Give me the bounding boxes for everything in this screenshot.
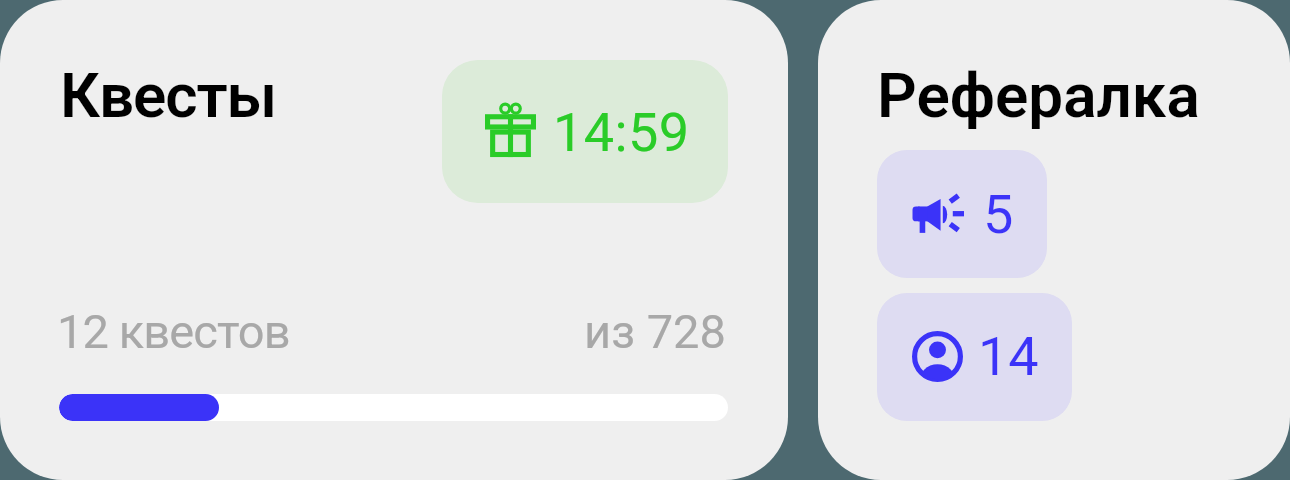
staticText: 14 xyxy=(978,325,1039,388)
button[interactable]: Рефералка xyxy=(818,0,1290,480)
staticText: 14:59 xyxy=(553,101,690,164)
staticText: Рефералка xyxy=(877,59,1200,132)
staticText: Квесты xyxy=(60,59,277,132)
other: Gift xyxy=(485,103,536,157)
button[interactable]: Gift xyxy=(442,60,728,203)
button[interactable]: Referrals xyxy=(877,293,1072,421)
other: Invites xyxy=(912,194,964,233)
button[interactable]: Квесты xyxy=(0,0,788,480)
other: Referrals xyxy=(912,331,963,382)
button[interactable]: Invites xyxy=(877,150,1047,278)
staticText: из 728 xyxy=(584,304,726,359)
staticText: 5 xyxy=(983,183,1014,246)
staticText: 12 квестов xyxy=(57,304,290,359)
